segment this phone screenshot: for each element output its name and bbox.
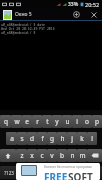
- button[interactable]: Close: [87, 8, 100, 21]
- button[interactable]: m: [77, 149, 87, 162]
- button[interactable]: q: [0, 115, 11, 128]
- staticText: y: [55, 117, 59, 126]
- button[interactable]: .: [74, 166, 85, 179]
- staticText: ?123: [4, 170, 14, 176]
- button[interactable]: u: [62, 115, 72, 128]
- button[interactable]: k: [77, 132, 87, 145]
- button[interactable]: Shift: [0, 149, 16, 162]
- staticText: g: [50, 134, 54, 143]
- button[interactable]: ↵: [85, 166, 102, 179]
- staticText: r: [36, 117, 39, 126]
- staticText: w: [14, 117, 20, 126]
- button[interactable]: Backspace: [87, 149, 102, 162]
- staticText: s: [20, 134, 24, 143]
- button[interactable]: w: [11, 115, 22, 128]
- button[interactable]: ?123: [0, 166, 18, 179]
- button[interactable]: j: [67, 132, 77, 145]
- button[interactable]: i: [72, 115, 82, 128]
- staticText: h: [60, 134, 65, 143]
- button[interactable]: b: [57, 149, 67, 162]
- staticText: k: [80, 134, 84, 143]
- staticText: l: [91, 134, 93, 143]
- staticText: i: [76, 117, 78, 126]
- button[interactable]: Space: [29, 166, 74, 179]
- button[interactable]: v: [47, 149, 57, 162]
- staticText: v: [50, 151, 54, 160]
- staticText: z: [20, 151, 24, 160]
- button[interactable]: o: [82, 115, 92, 128]
- button[interactable]: z: [16, 149, 27, 162]
- staticText: Каталог бесплатных программ: [44, 165, 92, 169]
- staticText: Окно 5: [15, 11, 32, 18]
- staticText: p: [95, 117, 99, 126]
- button[interactable]: p: [92, 115, 102, 128]
- staticText: Wed Oct 28 20:52:49 PST 2016: [1, 27, 55, 31]
- staticText: b: [60, 151, 64, 160]
- button[interactable]: g: [47, 132, 57, 145]
- staticText: u0_a68@android:/ $: [1, 31, 38, 35]
- button[interactable]: e: [22, 115, 32, 128]
- staticText: ,: [23, 168, 25, 177]
- button[interactable]: h: [57, 132, 67, 145]
- button[interactable]: ,: [18, 166, 29, 179]
- button[interactable]: y: [52, 115, 62, 128]
- staticText: d: [30, 134, 34, 143]
- staticText: x: [30, 151, 34, 160]
- button[interactable]: s: [17, 132, 27, 145]
- staticText: n: [70, 151, 75, 160]
- button[interactable]: c: [37, 149, 47, 162]
- button[interactable]: r: [32, 115, 42, 128]
- staticText: SOFT: [68, 170, 93, 180]
- staticText: 33%: [68, 1, 79, 8]
- button[interactable]: l: [87, 132, 97, 145]
- staticText: j: [71, 134, 73, 143]
- button[interactable]: t: [42, 115, 52, 128]
- staticText: 20:52: [85, 1, 100, 8]
- staticText: a: [10, 134, 14, 143]
- staticText: .: [79, 168, 81, 177]
- staticText: ↵: [91, 169, 97, 177]
- button[interactable]: n: [67, 149, 77, 162]
- button[interactable]: f: [37, 132, 47, 145]
- staticText: FREE: [44, 170, 68, 180]
- staticText: t: [46, 117, 49, 126]
- staticText: f: [41, 134, 44, 143]
- button[interactable]: New window: [70, 8, 83, 21]
- staticText: c: [40, 151, 44, 160]
- staticText: u0_a68@android:/ $ date: [1, 23, 45, 27]
- staticText: e: [25, 117, 29, 126]
- button[interactable]: a: [6, 132, 17, 145]
- button[interactable]: x: [27, 149, 37, 162]
- button[interactable]: d: [27, 132, 37, 145]
- staticText: o: [85, 117, 89, 126]
- staticText: u: [65, 117, 70, 126]
- staticText: m: [79, 151, 86, 160]
- staticText: q: [4, 117, 8, 126]
